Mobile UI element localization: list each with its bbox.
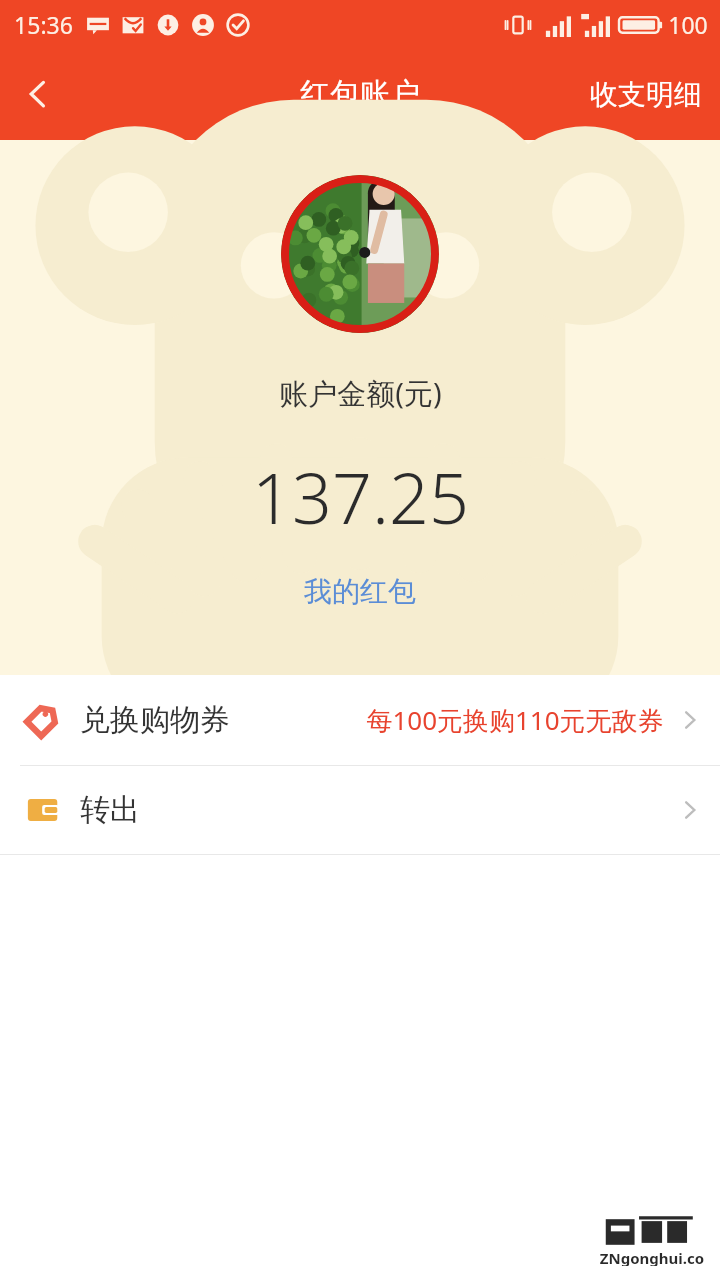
staticText: 转出 [80,791,140,829]
staticText: ZNgonghui.com [598,1248,706,1266]
button[interactable]: 我的红包 [288,568,432,615]
staticText: 我的红包 [304,574,416,609]
button[interactable]: 收支明细 [572,63,720,126]
staticText: 每100元换购110元无敌券 [366,702,664,738]
button[interactable]: Profile photo [281,175,439,333]
staticText: 兑换购物券 [80,701,230,739]
staticText: 137.25 [252,449,469,544]
staticText: 账户金额(元) [279,373,442,413]
button[interactable]: Back [0,56,76,132]
button[interactable]: 兑换购物券 [0,675,720,765]
staticText: 红包账户 [300,75,420,113]
staticText: 15:36 [14,9,73,40]
staticText: 收支明细 [590,77,702,112]
button[interactable]: 转出 [0,766,720,854]
staticText: 100 [668,9,708,40]
